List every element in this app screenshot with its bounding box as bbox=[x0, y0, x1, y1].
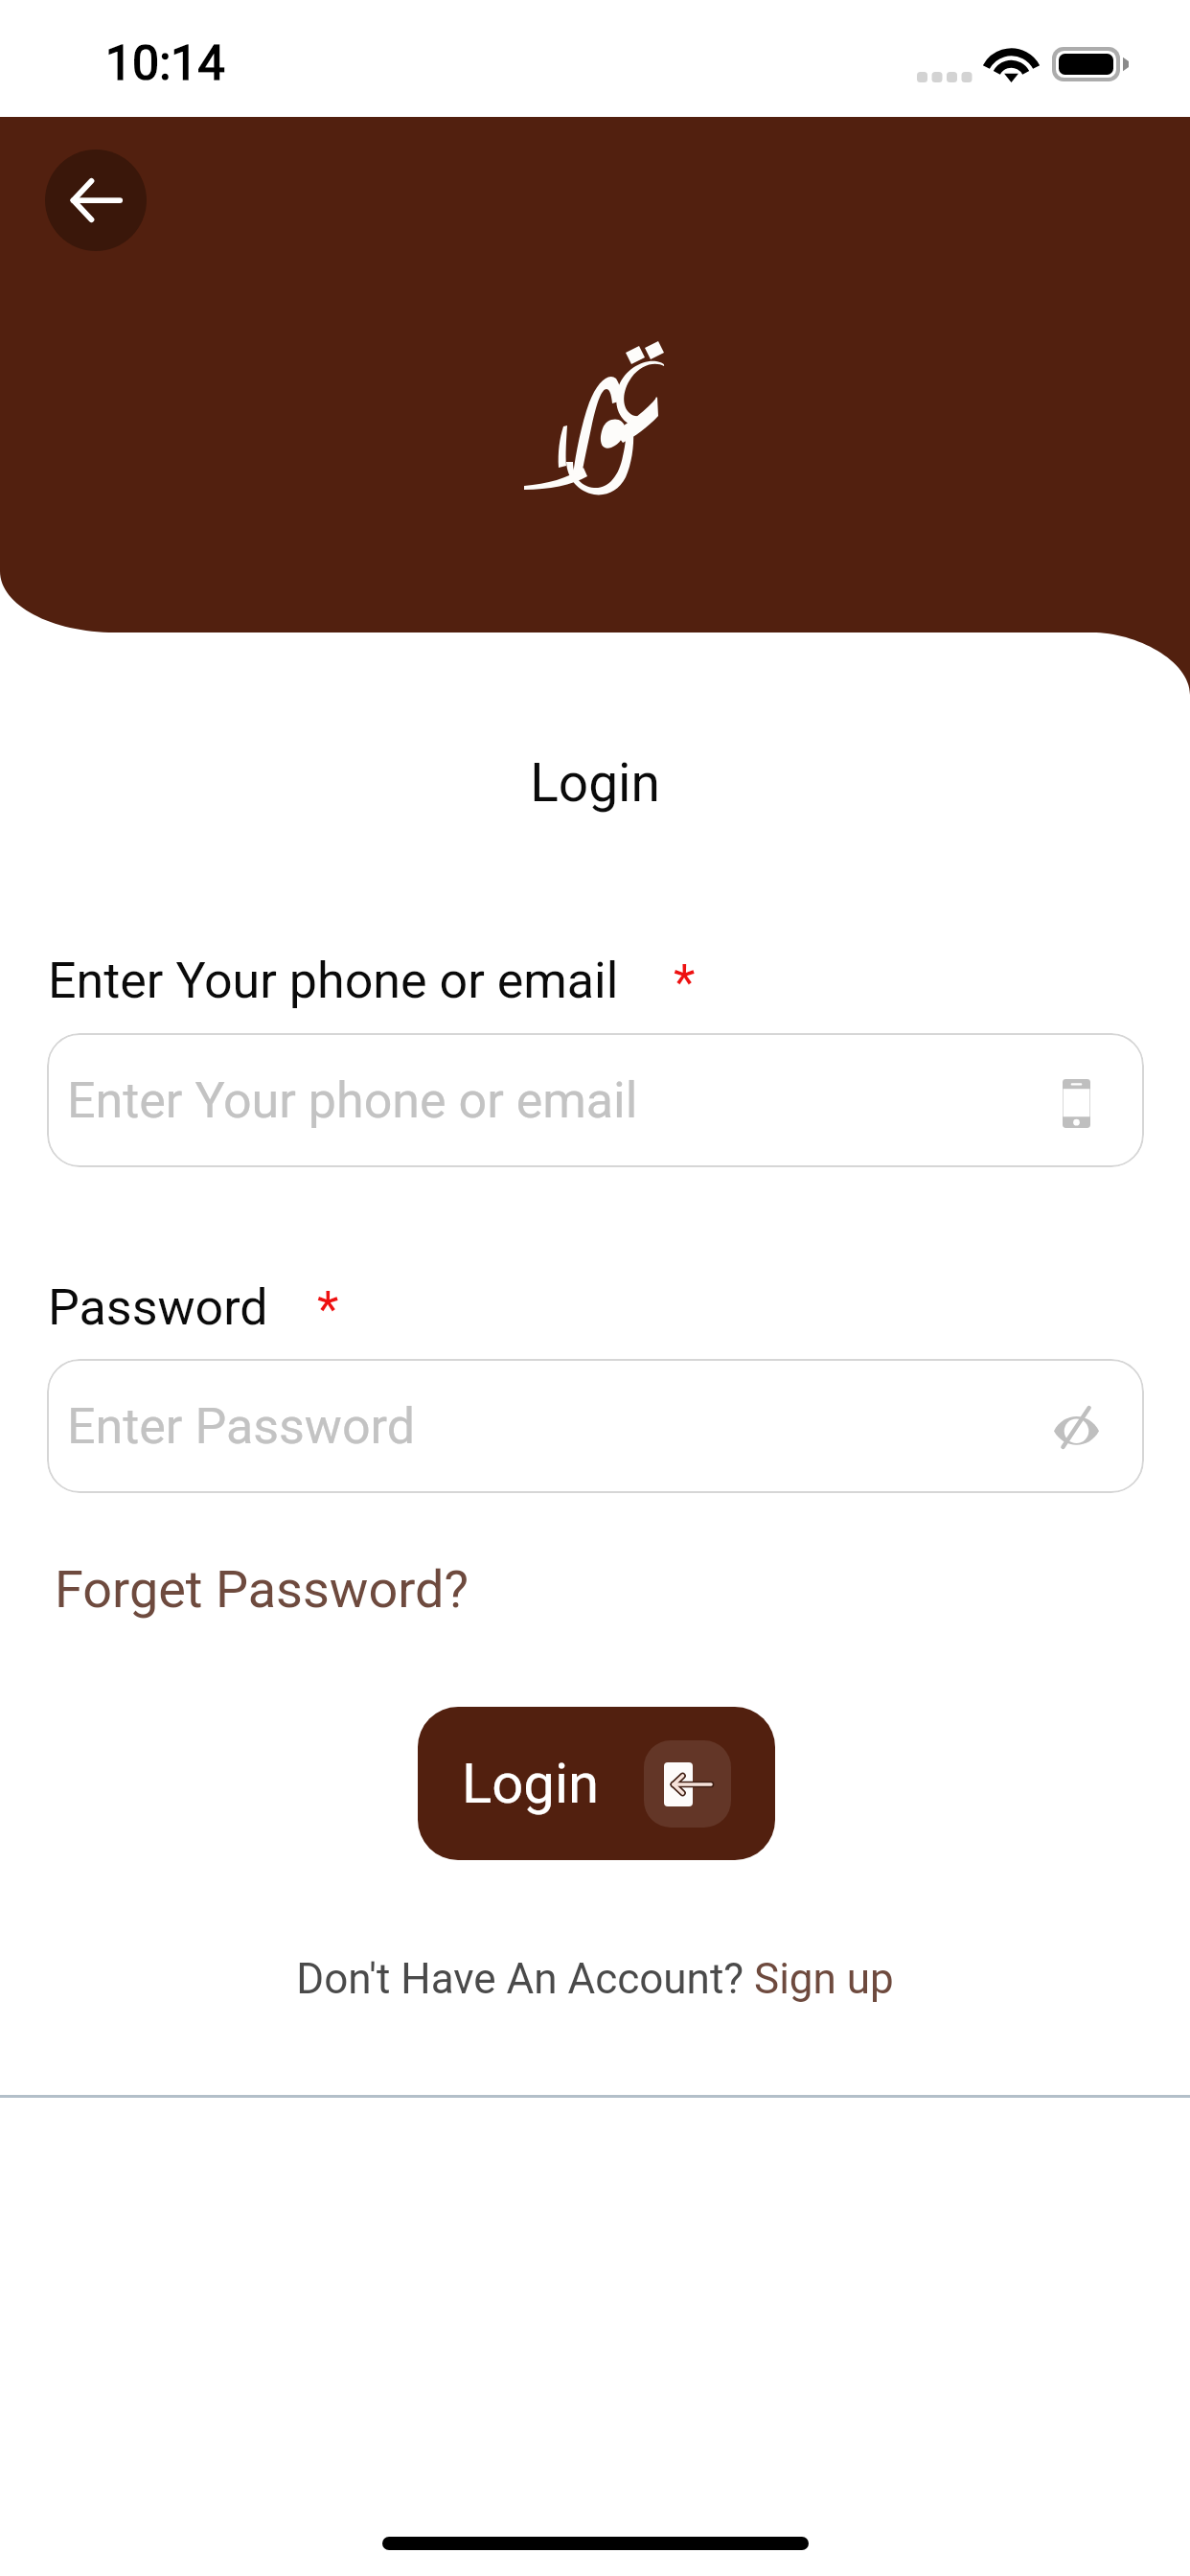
button[interactable]: Login bbox=[418, 1707, 775, 1860]
button[interactable]: Show password bbox=[1041, 1392, 1111, 1460]
staticText: 10:14 bbox=[105, 35, 225, 92]
staticText: * bbox=[317, 1280, 339, 1339]
staticText: Login bbox=[0, 752, 1190, 814]
button[interactable]: Don't Have An Account? Sign up bbox=[0, 1954, 1190, 2004]
button[interactable]: Enter Password bbox=[47, 1359, 1144, 1493]
staticText: Enter Password bbox=[67, 1397, 416, 1456]
staticText: Password bbox=[48, 1278, 268, 1337]
staticText: Enter Your phone or email bbox=[67, 1071, 638, 1130]
staticText: Enter Your phone or email bbox=[48, 952, 619, 1010]
button[interactable]: Back bbox=[45, 149, 147, 251]
staticText: Login bbox=[462, 1751, 600, 1816]
staticText: * bbox=[674, 954, 696, 1012]
staticText: Forget Password? bbox=[55, 1559, 469, 1620]
button[interactable]: Forget Password? bbox=[55, 1559, 469, 1620]
button[interactable]: Enter Your phone or email bbox=[47, 1033, 1144, 1167]
